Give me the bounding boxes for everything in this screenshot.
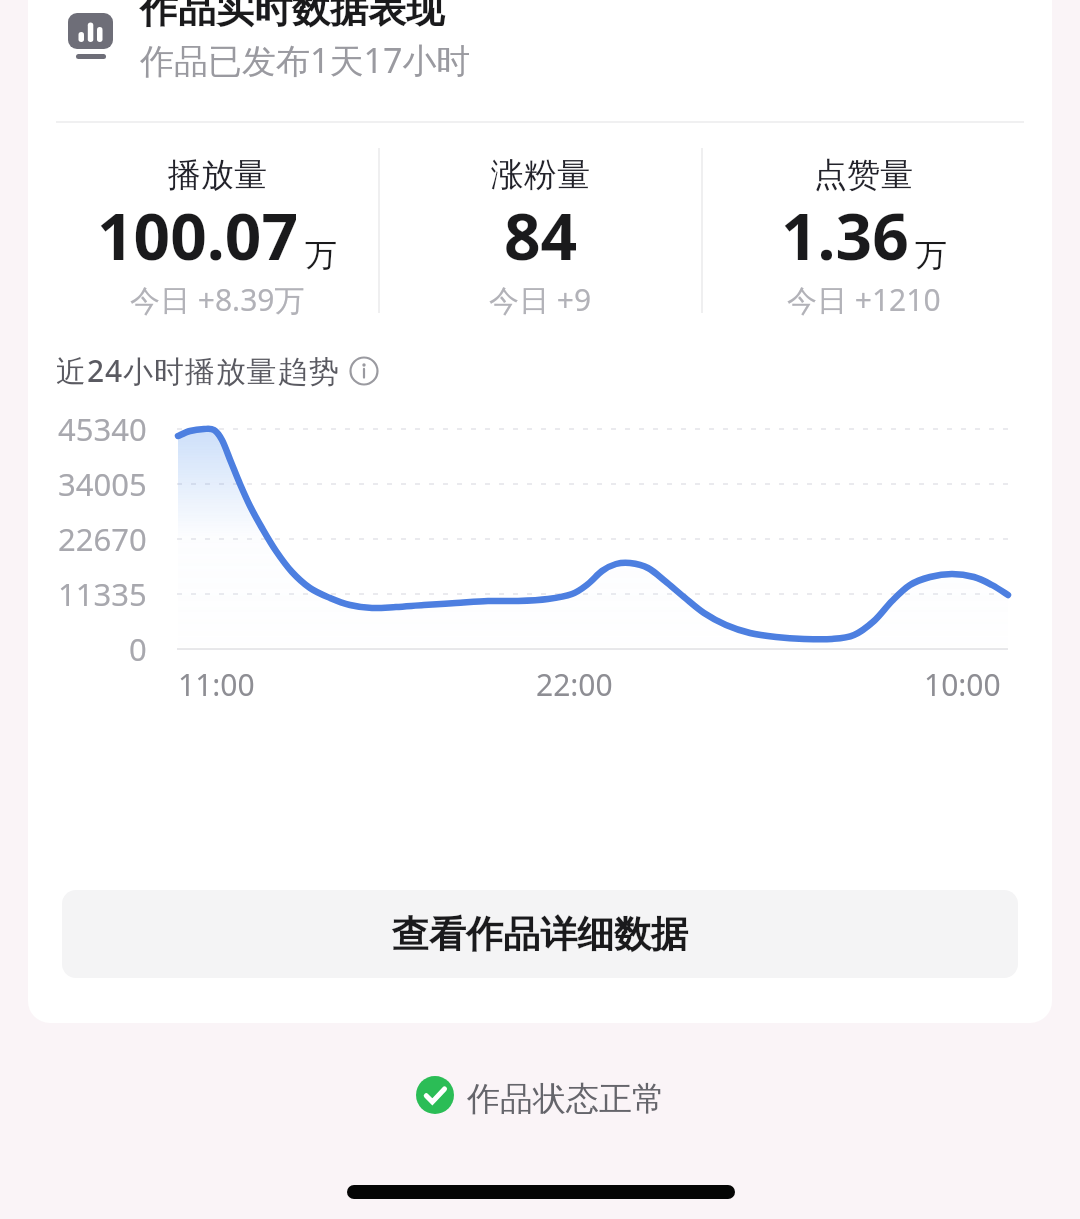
staticText: 今日 +9 [489, 279, 592, 320]
staticText: 22:00 [536, 664, 613, 705]
staticText: 点赞量 [814, 154, 913, 196]
button[interactable]: 作品状态正常 [0, 1068, 1080, 1130]
staticText: 100.07 [97, 192, 299, 279]
staticText: 查看作品详细数据 [392, 911, 688, 958]
staticText: 万 [915, 235, 947, 275]
staticText: 今日 +8.39万 [130, 279, 305, 320]
staticText: 今日 +1210 [787, 279, 941, 320]
staticText: 84 [504, 192, 578, 279]
staticText: 45340 [58, 408, 147, 450]
staticText: 播放量 [168, 154, 267, 196]
staticText: 万 [305, 235, 337, 275]
button[interactable]: 点赞量 [703, 143, 1024, 318]
staticText: 1.36 [781, 192, 909, 279]
staticText: 作品实时数据表现 [140, 0, 444, 33]
staticText: 作品已发布1天17小时 [140, 37, 471, 83]
staticText: 近24小时播放量趋势 [56, 350, 340, 391]
staticText: 11335 [58, 573, 147, 615]
staticText: 涨粉量 [491, 154, 590, 196]
staticText: 11:00 [178, 664, 255, 705]
button[interactable]: 播放量 [56, 143, 378, 318]
staticText: 10:00 [924, 664, 1001, 705]
button[interactable]: 涨粉量 [380, 143, 701, 318]
staticText: 作品状态正常 [467, 1078, 665, 1120]
staticText: 0 [129, 628, 147, 670]
button[interactable]: 数据说明 [346, 353, 382, 389]
staticText: 22670 [58, 518, 147, 560]
button[interactable]: 查看作品详细数据 [62, 890, 1018, 978]
staticText: 34005 [58, 463, 147, 505]
button[interactable]: 作品实时数据表现 [28, 0, 1052, 121]
